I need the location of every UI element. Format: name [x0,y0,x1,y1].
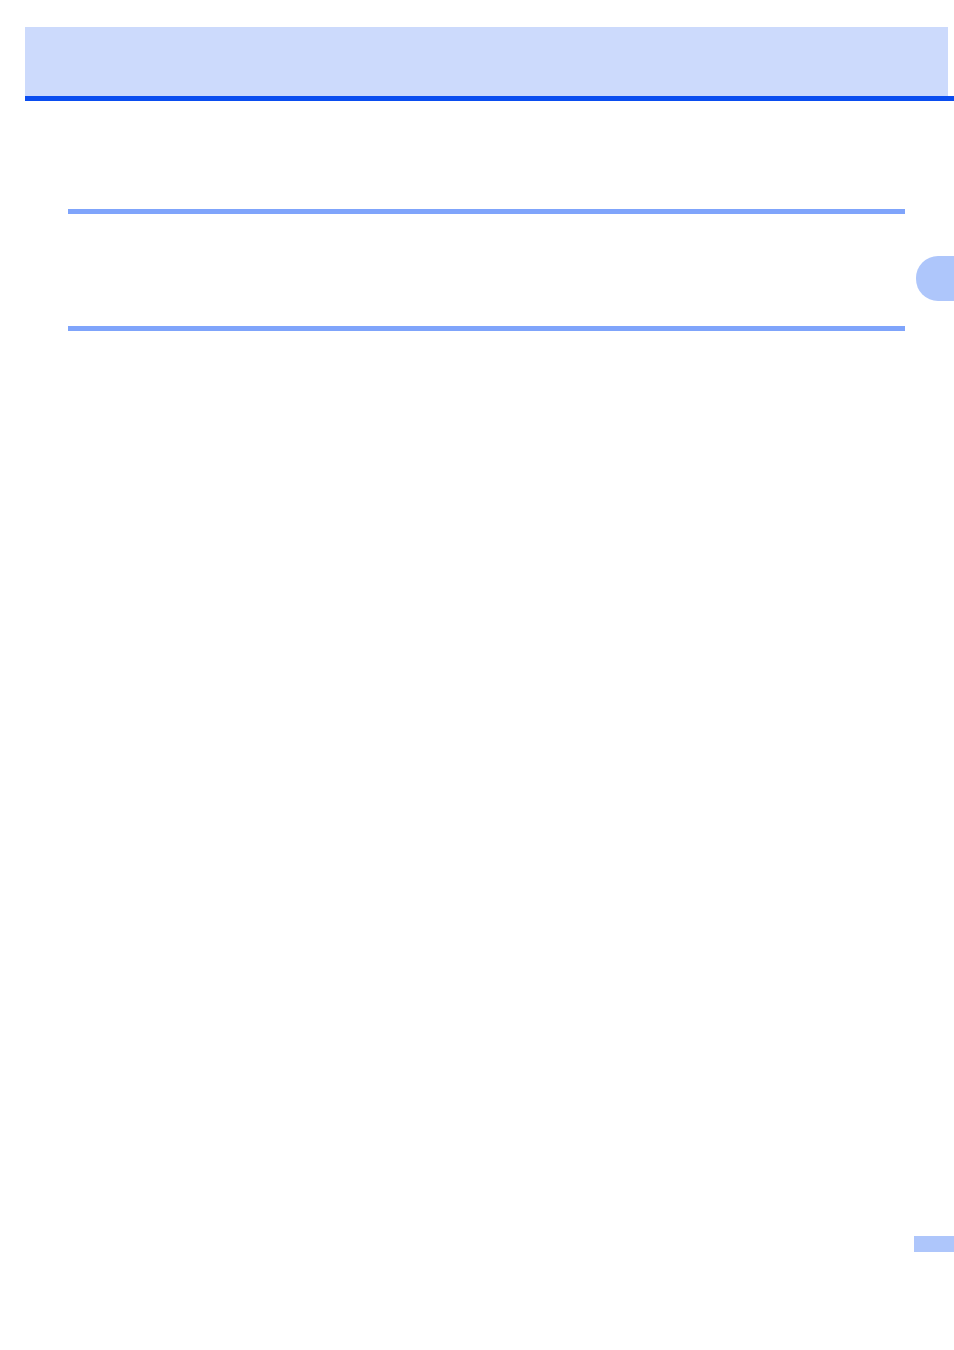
button[interactable]: Chapter tab [916,256,954,301]
